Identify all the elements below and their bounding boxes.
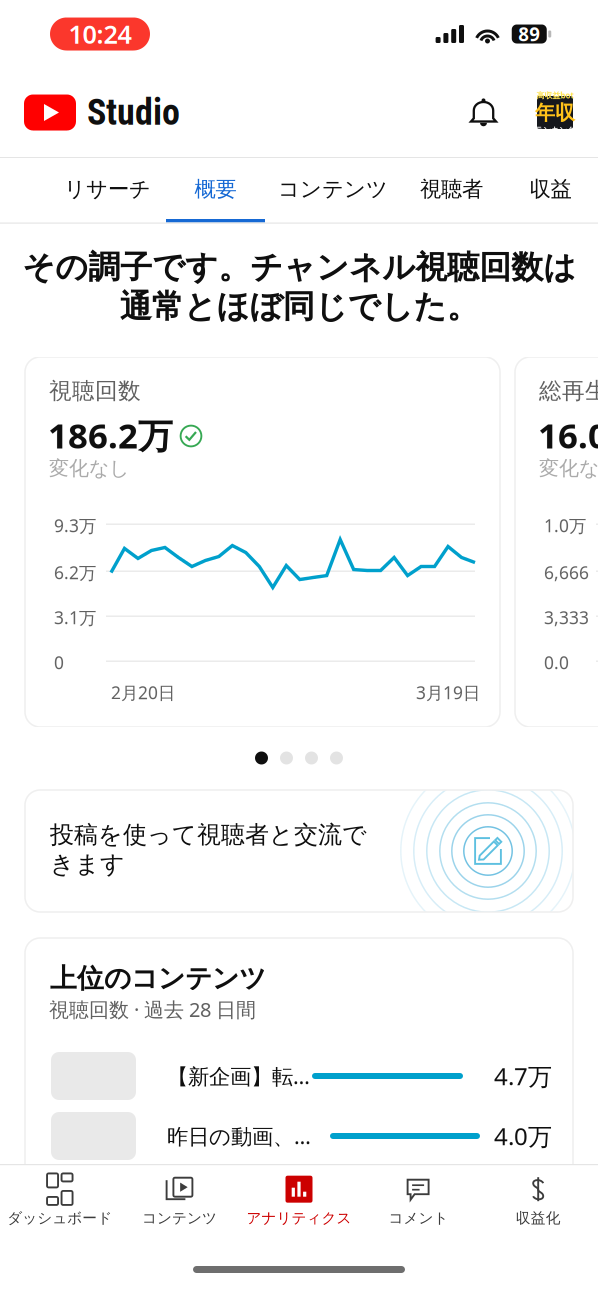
staticText: 3.1万 <box>54 606 96 629</box>
button[interactable]: YouTube Studio <box>24 77 180 148</box>
staticText: 0.0 <box>544 651 569 674</box>
staticText: 総再生時間 <box>539 377 598 405</box>
staticText: 投稿を使って視聴者と交流で きます <box>50 820 367 879</box>
button[interactable]: 投稿を使って視聴者と交流で きます <box>25 790 573 912</box>
staticText: 収益化 <box>516 1209 561 1227</box>
button[interactable]: Notifications <box>454 82 513 143</box>
staticText: 10:24 <box>68 17 131 51</box>
staticText: 89 <box>518 22 540 46</box>
staticText: コンテンツ <box>278 176 388 202</box>
staticText: 186.2万 <box>48 412 173 458</box>
staticText: 6,666 <box>544 561 589 584</box>
staticText: ランキング <box>535 125 575 135</box>
staticText: 4.0万 <box>494 1120 552 1152</box>
staticText: 上位のコンテンツ <box>50 962 266 995</box>
staticText: 3月19日 <box>416 681 480 704</box>
staticText: 0 <box>54 651 64 674</box>
staticText: 視聴者 <box>420 176 483 202</box>
staticText: 9.3万 <box>54 514 96 537</box>
button[interactable]: 収益 <box>501 158 598 222</box>
staticText: 年収 <box>535 101 575 125</box>
staticText: 2月20日 <box>111 681 175 704</box>
button[interactable]: 昨日の動画、… <box>25 1112 573 1160</box>
button[interactable]: 視聴者 <box>402 158 501 222</box>
staticText: 【新企画】転… <box>167 1062 310 1090</box>
button[interactable]: 【新企画】転… <box>25 1052 573 1100</box>
staticText: 収益 <box>529 176 571 202</box>
staticText: 変化なし <box>539 456 598 481</box>
staticText: 高収益bot <box>536 90 573 101</box>
button[interactable]: アナリティクス <box>239 1165 359 1235</box>
staticText: 6.2万 <box>54 561 96 584</box>
staticText: コメント <box>389 1209 449 1227</box>
staticText: ダッシュボード <box>7 1209 112 1227</box>
button[interactable]: コメント <box>359 1165 478 1235</box>
staticText: アナリティクス <box>246 1209 351 1227</box>
staticText: Studio <box>87 91 180 134</box>
staticText: 概要 <box>194 176 236 202</box>
button[interactable]: 概要 <box>166 158 265 222</box>
button[interactable]: コンテンツ <box>120 1165 239 1235</box>
button[interactable]: 収益化 <box>478 1165 598 1235</box>
button[interactable]: リサーチ <box>58 158 157 222</box>
staticText: 視聴回数 · 過去 28 日間 <box>49 996 256 1023</box>
staticText: 視聴回数 <box>49 377 141 405</box>
button[interactable]: コンテンツ <box>272 158 394 222</box>
staticText: 変化なし <box>49 456 129 481</box>
button[interactable]: Your channel <box>513 82 573 143</box>
staticText: 1.0万 <box>544 514 586 537</box>
staticText: リサーチ <box>64 176 151 202</box>
staticText: 昨日の動画、… <box>167 1122 311 1150</box>
staticText: 3,333 <box>544 606 589 629</box>
staticText: その調子です。チャンネル視聴回数は 通常とほぼ同じでした。 <box>22 248 576 326</box>
staticText: 4.7万 <box>494 1060 552 1092</box>
staticText: 16.0 <box>538 412 598 458</box>
button[interactable]: ダッシュボード <box>0 1165 120 1235</box>
staticText: コンテンツ <box>142 1209 217 1227</box>
